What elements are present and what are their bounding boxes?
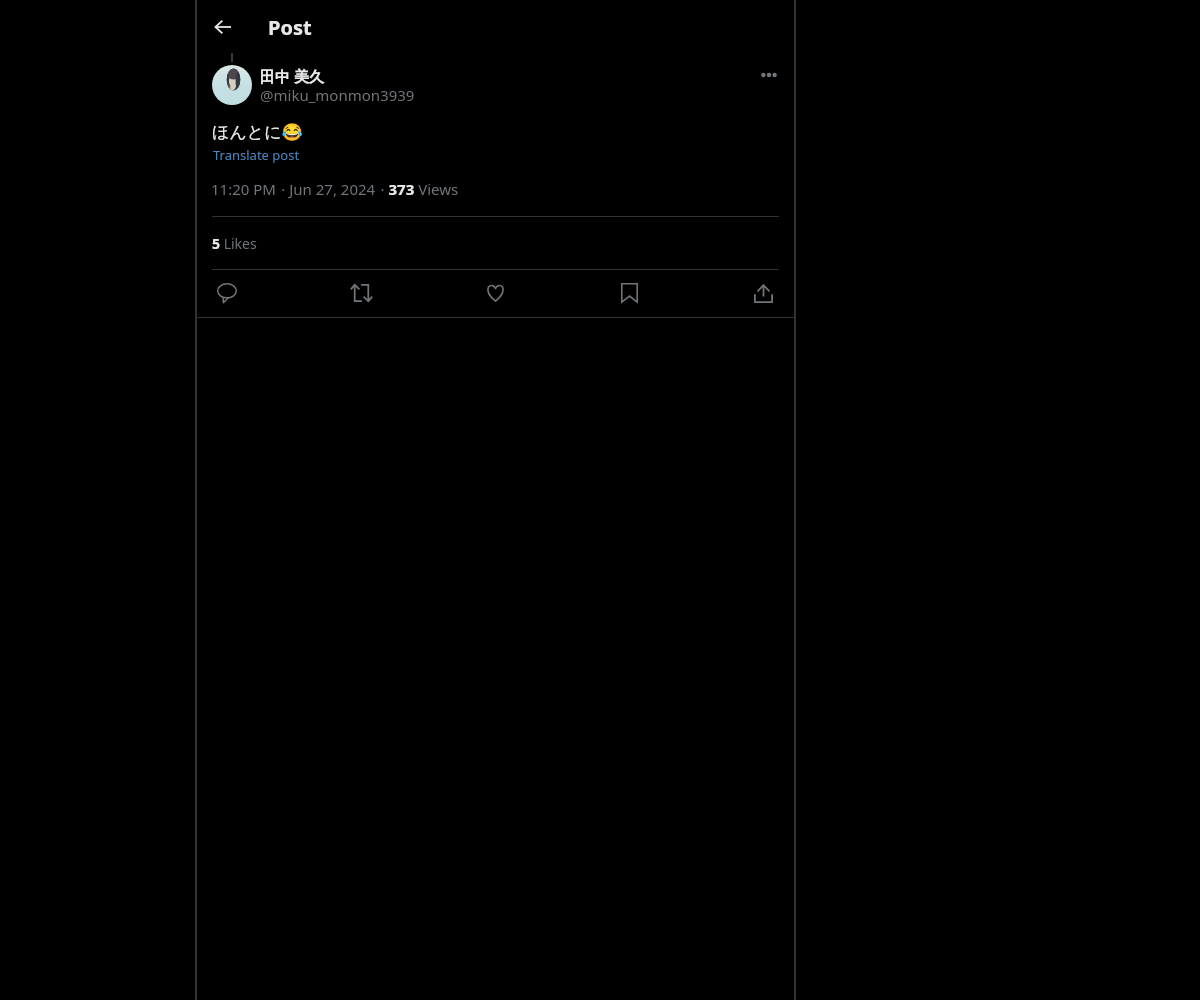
button[interactable]: More options — [754, 60, 784, 90]
button[interactable]: Bookmark — [611, 275, 647, 311]
staticText: Post — [268, 14, 312, 41]
button[interactable]: Like — [477, 275, 513, 311]
staticText: Translate post — [213, 146, 300, 164]
staticText: ほんとに😂 — [212, 122, 303, 143]
staticText: 5 Likes — [212, 234, 257, 253]
button[interactable]: Repost — [343, 275, 379, 311]
staticText: 11:20 PM · Jun 27, 2024 · 373 Views — [211, 179, 459, 199]
staticText: 田中 美久 — [260, 66, 324, 86]
button[interactable]: Share — [745, 275, 781, 311]
button[interactable]: Reply — [209, 275, 245, 311]
staticText: @miku_monmon3939 — [260, 85, 415, 105]
button[interactable]: Profile photo — [212, 65, 252, 105]
button[interactable]: Translate post — [213, 146, 300, 164]
button[interactable]: Back — [208, 12, 238, 42]
